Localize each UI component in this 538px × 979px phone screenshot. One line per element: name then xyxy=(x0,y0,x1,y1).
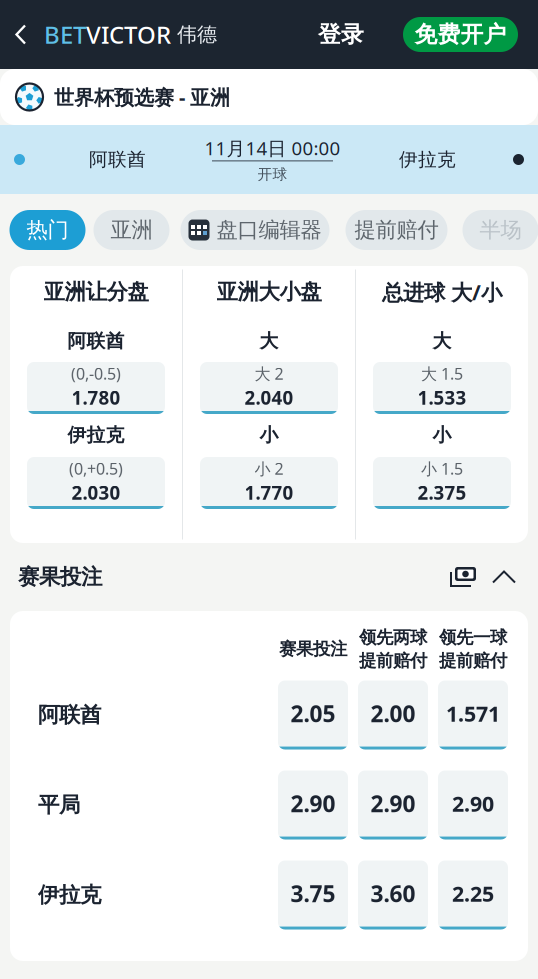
button[interactable]: 1.571 xyxy=(438,680,508,749)
button[interactable]: 大 1.5 xyxy=(373,362,511,414)
button[interactable]: 盘口编辑器 xyxy=(180,210,329,250)
staticText: 提前赔付 xyxy=(359,650,427,671)
staticText: 总进球 大/小 xyxy=(382,278,502,306)
staticText: 平局 xyxy=(38,792,80,818)
staticText: 提前赔付 xyxy=(354,217,438,243)
staticText: 小 2 xyxy=(254,458,283,479)
staticText: 大 xyxy=(259,329,278,352)
staticText: 3.75 xyxy=(290,878,335,908)
staticText: 小 1.5 xyxy=(421,458,463,479)
staticText: 伊拉克 xyxy=(399,148,456,171)
staticText: 登录 xyxy=(318,21,364,48)
button[interactable]: 免费开户 xyxy=(403,17,518,52)
staticText: 半场 xyxy=(479,217,521,243)
staticText: 阿联酋 xyxy=(89,148,146,171)
button[interactable]: Back xyxy=(14,23,36,45)
staticText: 小 xyxy=(432,423,451,446)
staticText: 亚洲 xyxy=(110,217,152,243)
staticText: 亚洲让分盘 xyxy=(43,279,148,305)
staticText: 2.90 xyxy=(290,788,335,818)
staticText: (0,-0.5) xyxy=(71,363,121,384)
button[interactable]: 2.25 xyxy=(438,860,508,929)
button[interactable]: 半场 xyxy=(462,210,538,250)
button[interactable]: 3.60 xyxy=(358,860,428,929)
staticText: 大 1.5 xyxy=(421,363,463,384)
staticText: 阿联酋 xyxy=(38,702,101,728)
staticText: 领先一球 xyxy=(439,627,507,648)
staticText: 阿联酋 xyxy=(67,329,124,352)
staticText: 2.90 xyxy=(452,789,494,818)
staticText: 1.780 xyxy=(71,385,120,410)
staticText: 伊拉克 xyxy=(67,423,124,446)
staticText: 亚洲大小盘 xyxy=(216,279,321,305)
button[interactable]: 3.75 xyxy=(278,860,348,929)
staticText: 领先两球 xyxy=(359,627,427,648)
button[interactable]: Cash out xyxy=(450,566,476,588)
staticText: 赛果投注 xyxy=(279,638,347,660)
staticText: 2.25 xyxy=(452,879,494,908)
button[interactable]: (0,+0.5) xyxy=(27,457,165,509)
button[interactable]: 提前赔付 xyxy=(345,210,447,250)
staticText: (0,+0.5) xyxy=(69,458,123,479)
staticText: 小 xyxy=(259,423,278,446)
button[interactable]: 2.90 xyxy=(438,770,508,839)
button[interactable]: 2.05 xyxy=(278,680,348,749)
staticText: 赛果投注 xyxy=(18,564,102,590)
staticText: 开球 xyxy=(257,165,287,183)
button[interactable]: 大 2 xyxy=(200,362,338,414)
button[interactable]: 登录 xyxy=(309,14,373,54)
staticText: 2.05 xyxy=(290,698,335,728)
button[interactable]: 2.00 xyxy=(358,680,428,749)
button[interactable]: Collapse section xyxy=(492,569,516,584)
staticText: 伟德 xyxy=(171,22,217,47)
staticText: 提前赔付 xyxy=(439,650,507,671)
staticText: 热门 xyxy=(26,217,68,243)
staticText: 1.571 xyxy=(446,699,500,728)
staticText: 世界杯预选赛 - 亚洲 xyxy=(54,84,230,110)
staticText: 2.375 xyxy=(417,480,466,505)
button[interactable]: 亚洲 xyxy=(93,210,169,250)
button[interactable]: 2.90 xyxy=(358,770,428,839)
staticText: 3.60 xyxy=(370,878,415,908)
button[interactable]: (0,-0.5) xyxy=(27,362,165,414)
staticText: BET xyxy=(44,19,86,50)
staticText: 2.030 xyxy=(71,480,120,505)
button[interactable]: 热门 xyxy=(9,210,85,250)
staticText: 1.770 xyxy=(244,480,293,505)
staticText: 伊拉克 xyxy=(38,882,101,908)
staticText: 大 xyxy=(432,329,451,352)
staticText: 大 2 xyxy=(254,363,283,384)
staticText: 1.533 xyxy=(417,385,466,410)
staticText: 盘口编辑器 xyxy=(216,217,321,243)
button[interactable]: 小 2 xyxy=(200,457,338,509)
button[interactable]: 2.90 xyxy=(278,770,348,839)
staticText: VICTOR xyxy=(86,19,171,50)
button[interactable]: 小 1.5 xyxy=(373,457,511,509)
staticText: 2.00 xyxy=(370,698,415,728)
staticText: 2.90 xyxy=(370,788,415,818)
staticText: 11月14日 00:00 xyxy=(204,136,340,160)
staticText: 免费开户 xyxy=(414,21,506,48)
staticText: 2.040 xyxy=(244,385,293,410)
